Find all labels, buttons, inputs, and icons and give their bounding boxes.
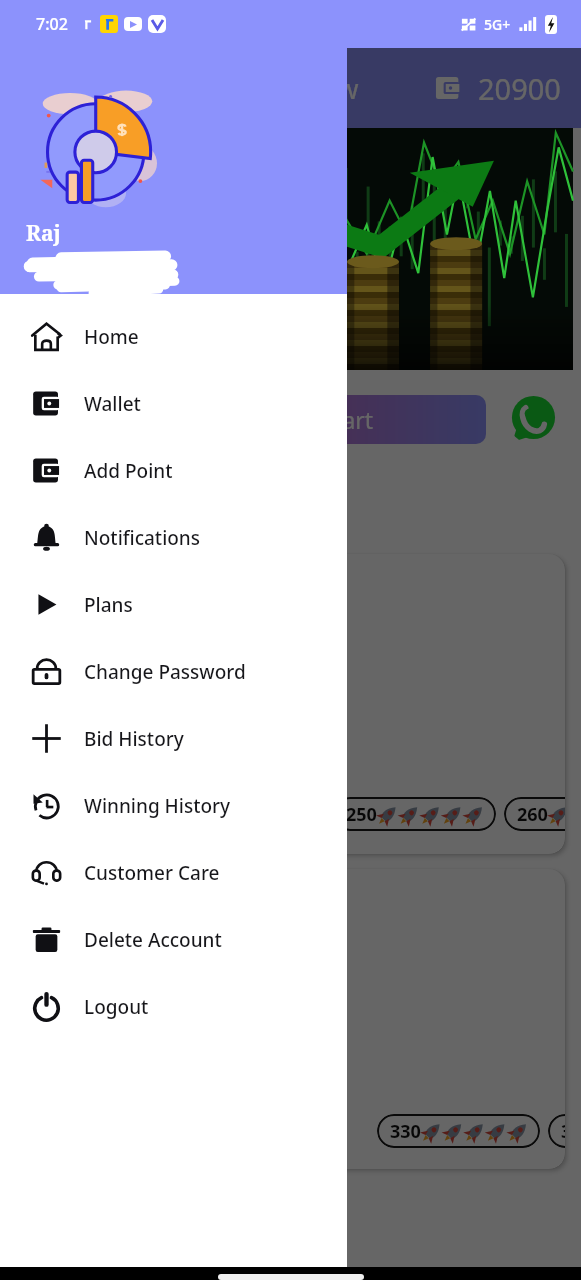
button[interactable]: Wallet: [0, 370, 347, 437]
button[interactable]: Notifications: [0, 504, 347, 571]
button[interactable]: 250: [346, 797, 485, 831]
button[interactable]: 260: [517, 797, 565, 831]
button[interactable]: Open menu: [16, 73, 46, 103]
staticText: 20900: [478, 69, 561, 108]
button[interactable]: Change Password: [0, 638, 347, 705]
button[interactable]: Sara India Matka Chart: [14, 395, 486, 444]
staticText: Sara Indian Matka Now: [64, 70, 359, 107]
button[interactable]: Customer Care: [0, 839, 347, 906]
staticText: Add Point: [84, 458, 173, 484]
staticText: Plans: [84, 592, 133, 618]
staticText: 330: [390, 1119, 421, 1144]
staticText: 250: [346, 802, 377, 827]
staticText: Customer Care: [84, 860, 220, 886]
staticText: Change Password: [84, 659, 246, 685]
staticText: Bid History: [84, 726, 184, 752]
button[interactable]: Bid History: [0, 705, 347, 772]
staticText: g: [26, 252, 36, 272]
staticText: Raj: [26, 219, 61, 248]
staticText: 5G+: [484, 15, 511, 34]
button[interactable]: 330: [390, 1114, 529, 1148]
button[interactable]: 340: [561, 1114, 565, 1148]
staticText: Logout: [84, 994, 149, 1020]
staticText: 7:02: [36, 13, 68, 35]
button[interactable]: WhatsApp: [508, 395, 557, 444]
button[interactable]: Delete Account: [0, 906, 347, 973]
staticText: Notifications: [84, 525, 201, 551]
staticText: 260: [517, 802, 548, 827]
staticText: 340: [561, 1119, 565, 1144]
button[interactable]: Winning History: [0, 772, 347, 839]
staticText: Winning History: [84, 793, 231, 819]
staticText: Home: [84, 324, 139, 350]
button[interactable]: Plans: [0, 571, 347, 638]
button[interactable]: Logout: [0, 973, 347, 1040]
button[interactable]: Add Point: [0, 437, 347, 504]
staticText: Wallet: [84, 391, 141, 417]
staticText: Sara India Matka Chart: [126, 404, 374, 435]
button[interactable]: Home: [0, 303, 347, 370]
staticText: Delete Account: [84, 927, 222, 953]
